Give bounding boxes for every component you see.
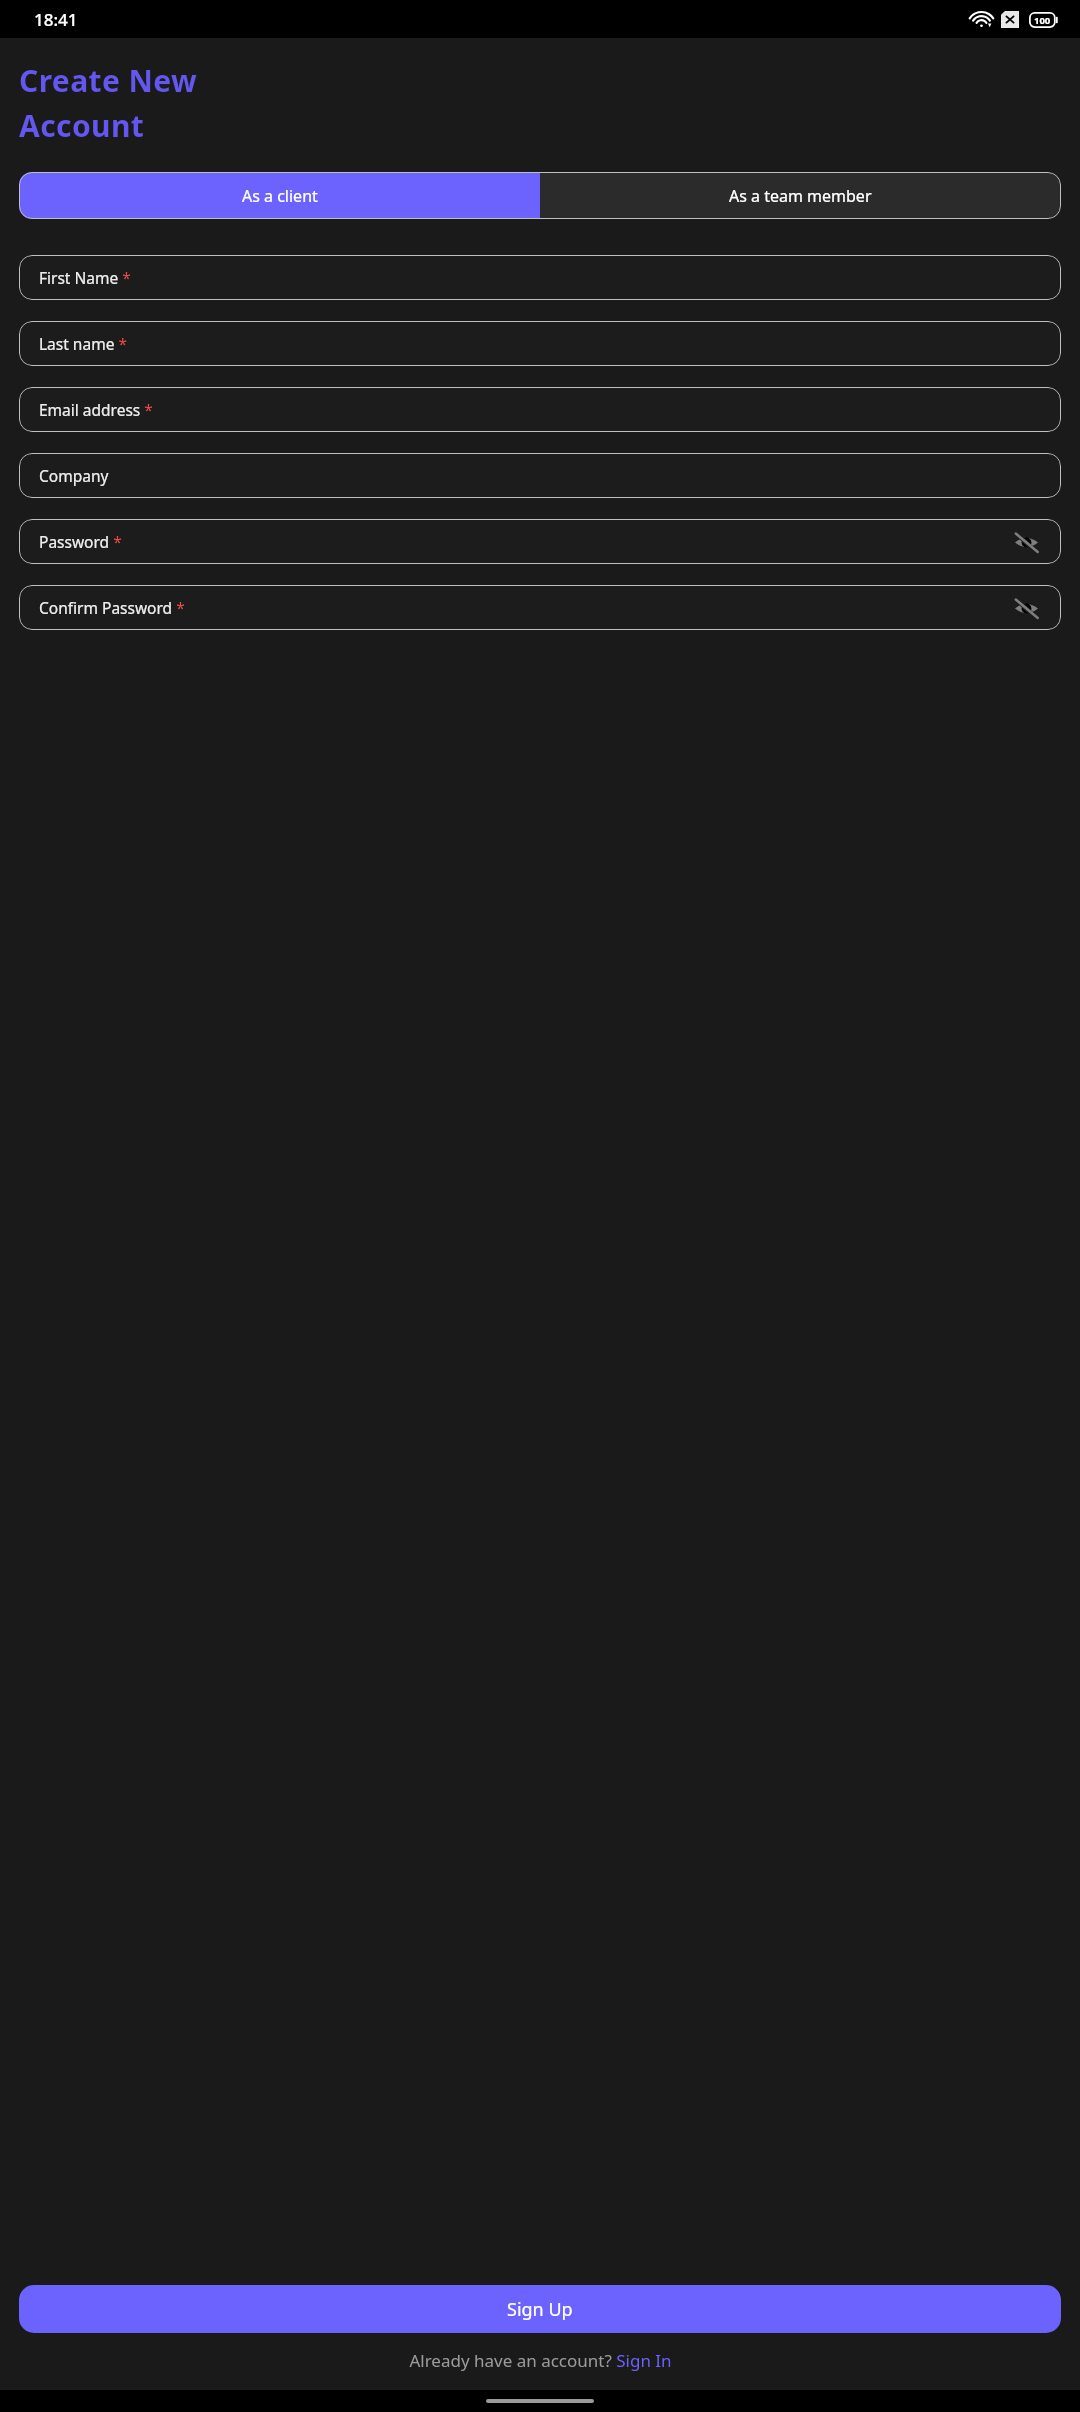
button[interactable]: Sign Up xyxy=(19,2285,1061,2333)
button[interactable]: Toggle password visibility xyxy=(1009,525,1043,559)
button[interactable]: Password * xyxy=(19,519,1061,564)
button[interactable]: As a team member xyxy=(540,172,1061,219)
staticText: As a team member xyxy=(729,185,872,207)
staticText: Email address * xyxy=(39,399,153,420)
button[interactable]: Confirm Password * xyxy=(19,585,1061,630)
staticText: Last name * xyxy=(39,333,127,354)
button[interactable]: Toggle password visibility xyxy=(1009,591,1043,625)
button[interactable]: Last name * xyxy=(19,321,1061,366)
button[interactable]: Email address * xyxy=(19,387,1061,432)
staticText: Account xyxy=(19,105,145,146)
staticText: First Name * xyxy=(39,267,131,288)
button[interactable]: Company xyxy=(19,453,1061,498)
staticText: Confirm Password * xyxy=(39,597,185,618)
staticText: Create New xyxy=(19,60,198,101)
button[interactable]: As a client xyxy=(19,172,540,219)
staticText: As a client xyxy=(242,185,318,207)
staticText: Sign Up xyxy=(507,2297,573,2322)
button[interactable]: Already have an account? Sign In xyxy=(0,2349,1080,2372)
staticText: 100 xyxy=(1034,14,1051,27)
staticText: Password * xyxy=(39,531,122,552)
staticText: Already have an account? Sign In xyxy=(409,2349,672,2372)
staticText: Company xyxy=(39,465,109,486)
button[interactable]: First Name * xyxy=(19,255,1061,300)
staticText: 18:41 xyxy=(34,8,78,31)
